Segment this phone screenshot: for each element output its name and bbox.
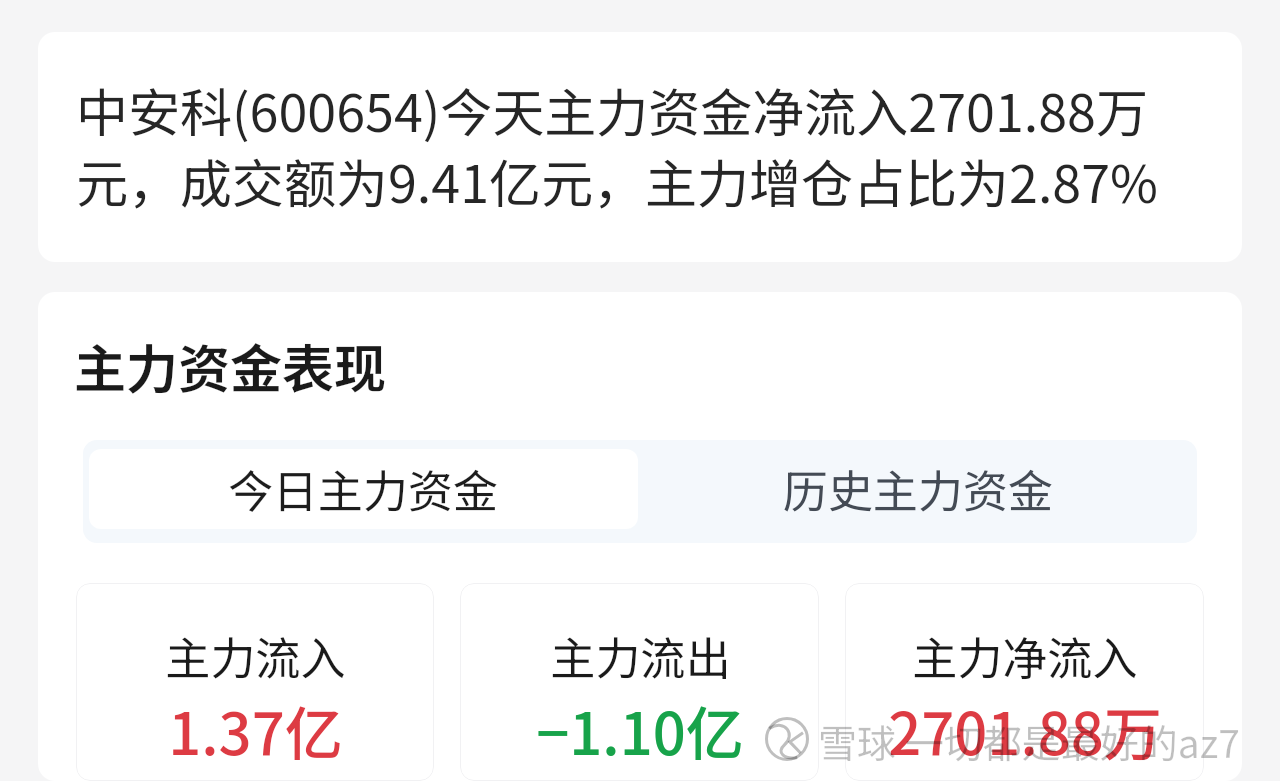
- staticText: 今日主力资金: [228, 456, 499, 521]
- staticText: −1.10亿: [536, 688, 744, 772]
- staticText: 1.37亿: [168, 688, 343, 772]
- button[interactable]: 中安科(600654)今天主力资金净流入2701.88万元，成交额为9.41亿元…: [38, 32, 1242, 262]
- staticText: 主力净流入: [912, 623, 1138, 688]
- button[interactable]: 主力流入: [76, 583, 434, 781]
- staticText: 2701.88万: [888, 688, 1162, 772]
- staticText: 主力流入: [165, 623, 346, 688]
- staticText: 主力资金表现: [74, 328, 387, 403]
- button[interactable]: 今日主力资金: [89, 449, 638, 529]
- staticText: 中安科(600654)今天主力资金净流入2701.88万元，成交额为9.41亿元…: [76, 72, 1204, 218]
- other: Xueqiu logo: [764, 716, 810, 762]
- staticText: 主力流出: [550, 623, 731, 688]
- staticText: 雪球 一切都是最好的az7: [818, 713, 1240, 769]
- button[interactable]: 主力流出: [460, 583, 819, 781]
- button[interactable]: 历史主力资金: [640, 440, 1197, 543]
- button[interactable]: 主力净流入: [845, 583, 1204, 781]
- staticText: 历史主力资金: [783, 456, 1054, 521]
